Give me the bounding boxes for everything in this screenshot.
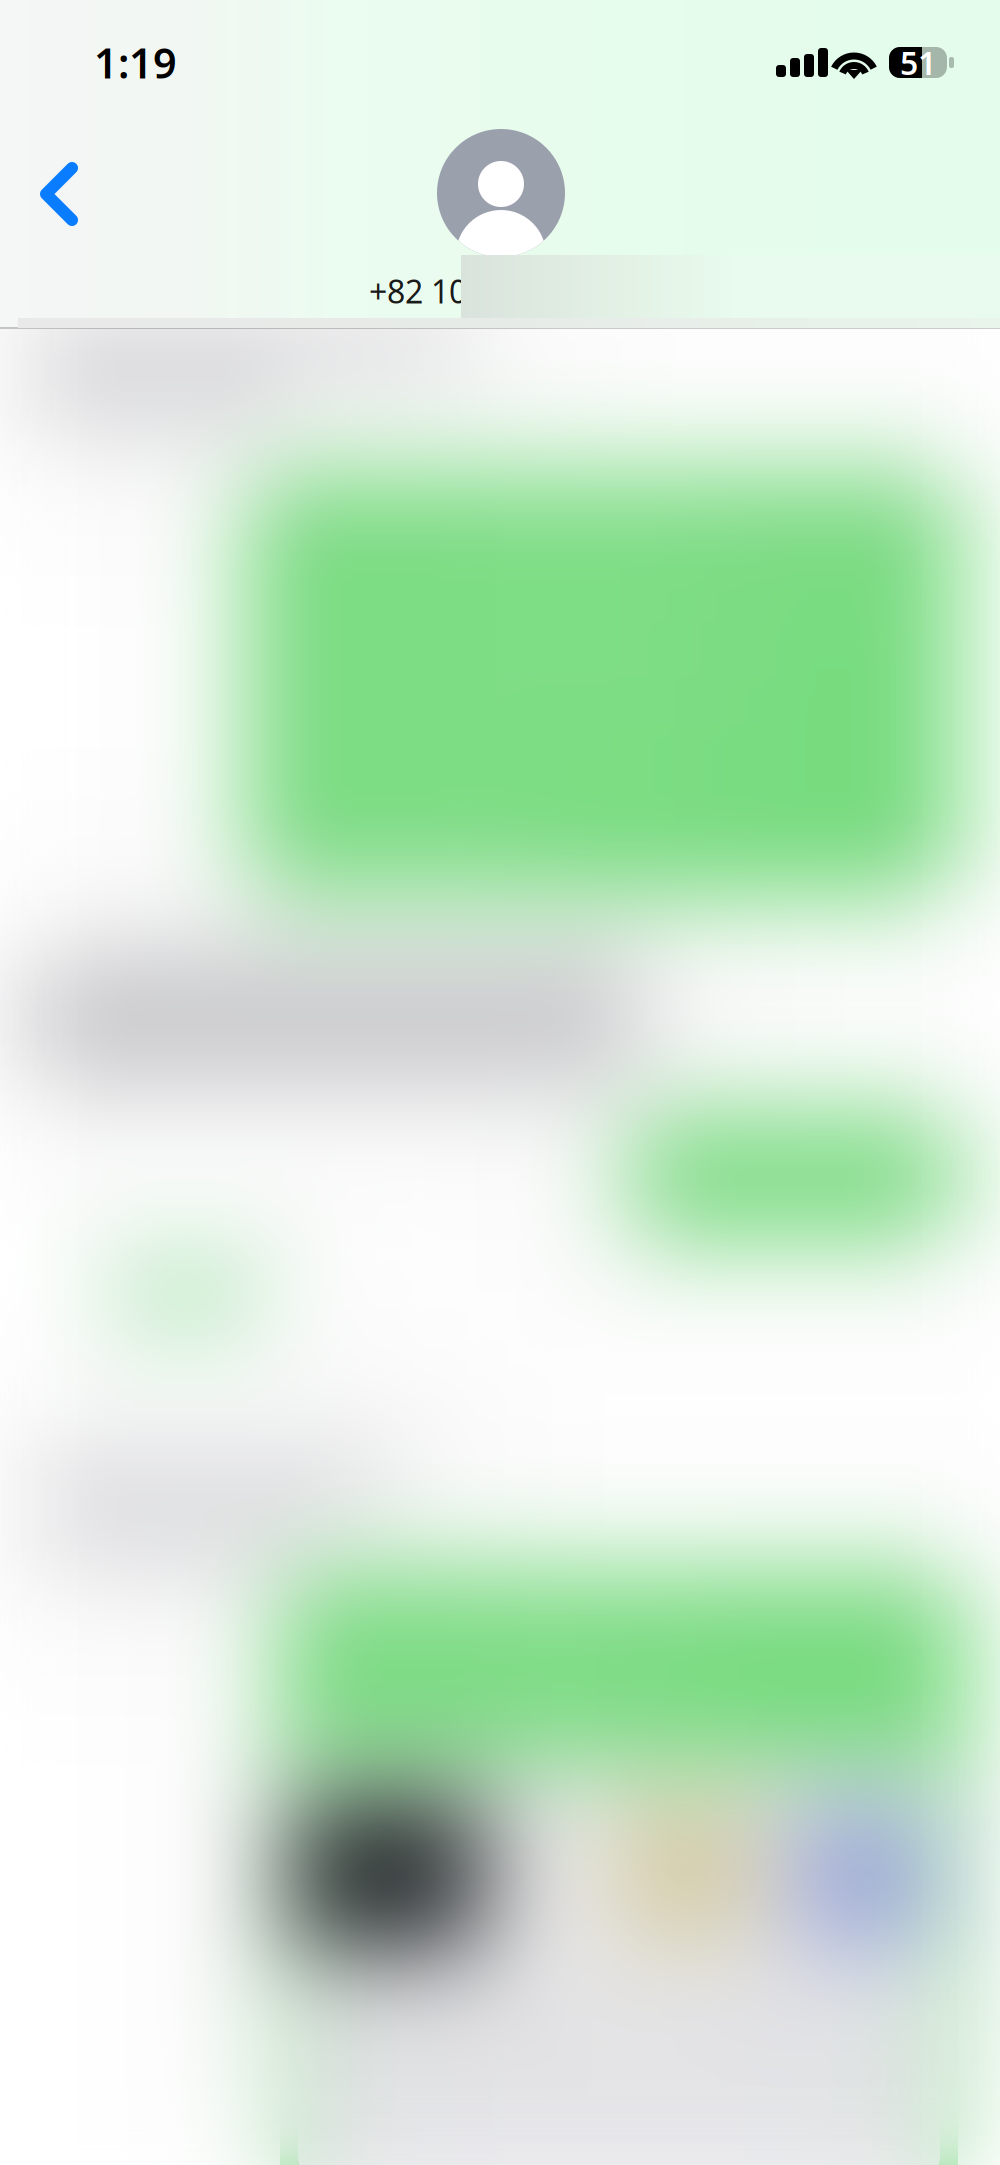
staticText: 1:19 — [94, 35, 177, 90]
staticText: 51 — [900, 41, 936, 84]
staticText: +82 10-0000-0000 — [369, 270, 631, 312]
button[interactable]: Conversation details — [0, 0, 360, 190]
button[interactable]: Back — [0, 0, 130, 130]
